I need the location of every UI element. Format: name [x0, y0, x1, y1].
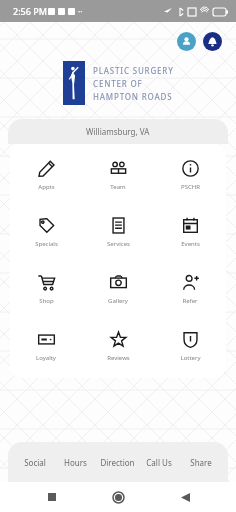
- button[interactable]: Specials: [10, 215, 82, 250]
- staticText: Gallery: [108, 297, 128, 305]
- staticText: ··: [78, 6, 83, 17]
- button[interactable]: Home: [103, 482, 133, 512]
- staticText: CENTER OF: [93, 78, 143, 89]
- other: Team: [110, 160, 127, 177]
- staticText: Events: [181, 240, 200, 248]
- staticText: Social: [24, 457, 46, 468]
- other: Appointments: [38, 160, 55, 177]
- staticText: Refer: [182, 297, 198, 305]
- staticText: Share: [190, 457, 212, 468]
- staticText: Call Us: [146, 457, 172, 468]
- button[interactable]: Williamsburg, VA: [8, 119, 228, 144]
- button[interactable]: Account: [177, 32, 196, 51]
- button[interactable]: Hours: [55, 442, 96, 482]
- staticText: Reviews: [107, 354, 130, 362]
- button[interactable]: About PSCHR: [154, 158, 226, 193]
- other: Lottery: [182, 331, 199, 348]
- other: Reviews: [110, 331, 127, 348]
- button[interactable]: Team: [82, 158, 154, 193]
- button[interactable]: Shop: [10, 272, 82, 307]
- other: Loyalty: [38, 331, 55, 348]
- button[interactable]: Lottery: [154, 329, 226, 364]
- other: Specials: [38, 217, 55, 234]
- staticText: PSCHR: [181, 183, 200, 191]
- staticText: Direction: [100, 457, 135, 468]
- button[interactable]: Share: [180, 442, 222, 482]
- button[interactable]: Back: [170, 482, 200, 512]
- staticText: 2:56 PM: [13, 5, 47, 17]
- staticText: Team: [110, 183, 126, 191]
- staticText: Appts: [38, 183, 55, 191]
- other: Refer: [182, 274, 199, 291]
- button[interactable]: Loyalty: [10, 329, 82, 364]
- button[interactable]: Social: [14, 442, 55, 482]
- button[interactable]: Events: [154, 215, 226, 250]
- button[interactable]: Services: [82, 215, 154, 250]
- button[interactable]: Refer: [154, 272, 226, 307]
- staticText: HAMPTON ROADS: [93, 91, 173, 102]
- staticText: Loyalty: [36, 354, 56, 362]
- button[interactable]: Direction: [96, 442, 138, 482]
- staticText: Hours: [64, 457, 87, 468]
- button[interactable]: Appointments: [10, 158, 82, 193]
- staticText: PLASTIC SURGERY: [93, 65, 174, 76]
- other: Shop: [38, 274, 55, 291]
- other: Events: [182, 217, 199, 234]
- other: Services: [110, 217, 127, 234]
- button[interactable]: Notifications: [203, 32, 222, 51]
- staticText: Lottery: [180, 354, 201, 362]
- staticText: Williamsburg, VA: [86, 126, 150, 137]
- other: Gallery: [110, 274, 127, 291]
- staticText: Shop: [39, 297, 54, 305]
- button[interactable]: Call Us: [138, 442, 180, 482]
- staticText: Services: [107, 240, 130, 248]
- staticText: Specials: [35, 240, 58, 248]
- button[interactable]: Reviews: [82, 329, 154, 364]
- other: About PSCHR: [182, 160, 199, 177]
- button[interactable]: Gallery: [82, 272, 154, 307]
- button[interactable]: Recents: [37, 482, 67, 512]
